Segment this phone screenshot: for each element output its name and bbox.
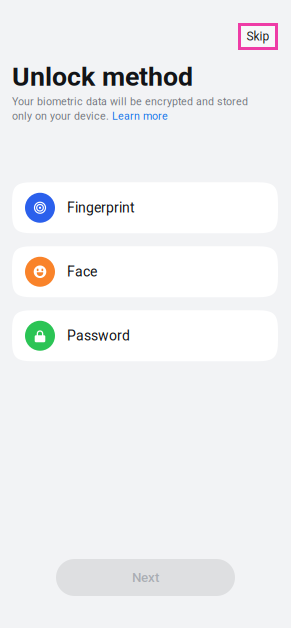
staticText: Password <box>67 327 130 344</box>
button[interactable]: Learn more <box>109 110 168 122</box>
staticText: Fingerprint <box>67 199 135 216</box>
button[interactable]: Next <box>56 559 235 596</box>
button[interactable]: Face <box>12 246 278 297</box>
staticText: Next <box>132 570 159 585</box>
staticText: Learn more <box>112 110 168 122</box>
staticText: only on your device. <box>12 110 109 122</box>
staticText: Face <box>67 263 97 280</box>
staticText: Unlock method <box>12 61 193 92</box>
button[interactable]: Password <box>12 310 278 361</box>
button[interactable]: Fingerprint <box>12 182 278 233</box>
staticText: Your biometric data will be encrypted an… <box>12 95 248 108</box>
staticText: Skip <box>246 29 269 44</box>
button[interactable]: Skip <box>238 23 278 50</box>
